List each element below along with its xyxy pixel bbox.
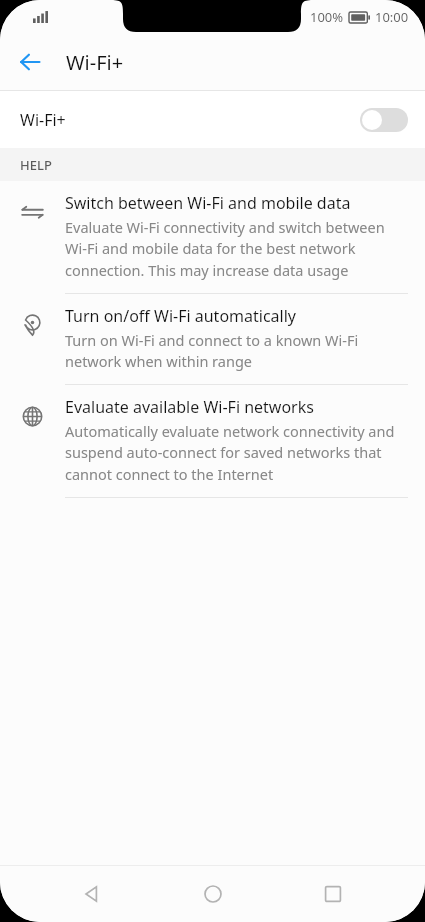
staticText: HELP (20, 156, 52, 174)
button[interactable]: Back (64, 866, 120, 922)
staticText: Evaluate available Wi-Fi networks (65, 396, 314, 418)
staticText: Wi-Fi+ (66, 49, 124, 76)
staticText: Switch between Wi-Fi and mobile data (65, 192, 351, 214)
staticText: Turn on Wi-Fi and connect to a known Wi-… (65, 330, 408, 372)
button[interactable]: Home (185, 866, 241, 922)
staticText: Turn on/off Wi-Fi automatically (65, 305, 296, 327)
button[interactable]: Recents (305, 866, 361, 922)
button[interactable]: Turn on/off Wi-Fi automatically (0, 294, 425, 385)
staticText: 10:00 (375, 8, 409, 26)
staticText: Automatically evaluate network connectiv… (65, 421, 408, 485)
other: Wi-Fi+ toggle, off (360, 108, 408, 132)
staticText: 100% (310, 8, 344, 26)
button[interactable]: Wi-Fi+ (0, 91, 425, 148)
button[interactable]: Back (8, 40, 52, 84)
button[interactable]: Evaluate available Wi-Fi networks (0, 385, 425, 498)
button[interactable]: Switch between Wi-Fi and mobile data (0, 181, 425, 294)
staticText: Evaluate Wi-Fi connectivity and switch b… (65, 217, 408, 281)
staticText: Wi-Fi+ (20, 109, 66, 131)
